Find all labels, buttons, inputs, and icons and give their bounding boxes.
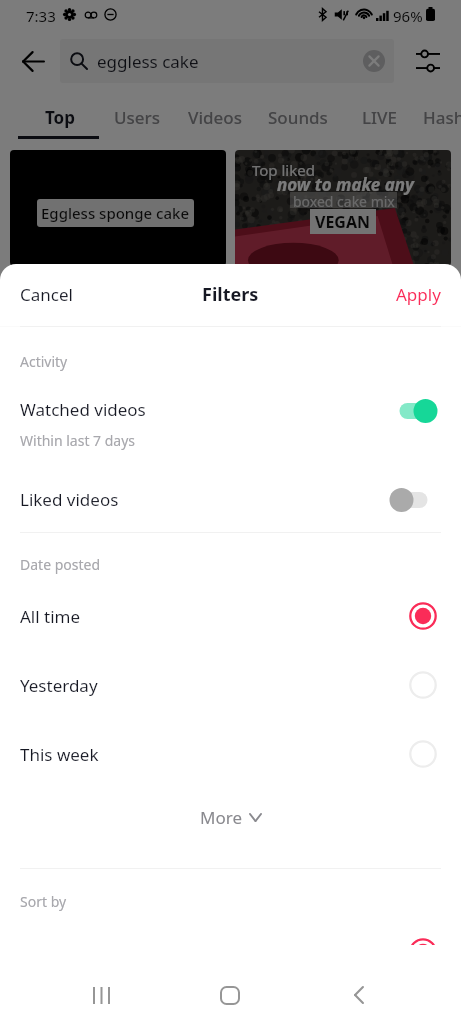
staticText: Sort by — [20, 892, 67, 911]
button[interactable]: Selected — [405, 938, 441, 945]
staticText: 96% — [393, 6, 423, 26]
staticText: Top liked — [252, 160, 315, 180]
staticText: Cancel — [20, 283, 73, 306]
staticText: Sounds — [268, 106, 328, 129]
button[interactable]: Top — [33, 100, 63, 146]
button[interactable]: Home — [209, 974, 251, 1016]
button[interactable]: Back — [10, 38, 56, 84]
staticText: Date posted — [20, 555, 101, 574]
staticText: Liked videos — [20, 488, 119, 511]
button[interactable] — [0, 657, 461, 715]
button[interactable]: eggless cake — [60, 39, 394, 83]
button[interactable]: Sounds — [256, 100, 316, 146]
button[interactable]: Not selected — [405, 671, 441, 707]
staticText: boxed cake mix — [293, 192, 395, 208]
button[interactable]: LIVE — [350, 100, 386, 146]
staticText: Videos — [188, 106, 242, 129]
staticText: Activity — [20, 352, 68, 371]
staticText: 7:33 — [26, 6, 56, 26]
staticText: Users — [114, 106, 161, 129]
staticText: More — [200, 806, 242, 829]
staticText: All time — [20, 605, 81, 628]
button[interactable] — [0, 726, 461, 784]
button[interactable] — [0, 588, 461, 646]
staticText: Filters — [202, 282, 259, 307]
button[interactable]: More — [0, 795, 461, 839]
staticText: Watched videos — [20, 398, 146, 421]
button[interactable]: Eggless sponge cake — [10, 150, 226, 266]
button[interactable]: Videos — [176, 100, 230, 146]
button[interactable]: Not selected — [405, 740, 441, 776]
button[interactable]: Search filters — [405, 38, 451, 84]
staticText: eggless cake — [97, 50, 199, 73]
button[interactable]: Off — [388, 487, 440, 513]
button[interactable]: Users — [102, 100, 149, 146]
button[interactable]: Top liked — [235, 150, 451, 266]
button[interactable]: Apply — [384, 276, 453, 313]
staticText: now to make any — [277, 173, 414, 196]
button[interactable]: On — [388, 398, 440, 424]
button[interactable]: Recent apps — [80, 974, 122, 1016]
button[interactable]: Clear search — [352, 39, 394, 83]
button[interactable]: Back — [338, 974, 380, 1016]
staticText: Top — [45, 106, 75, 129]
staticText: Yesterday — [20, 674, 98, 697]
staticText: Within last 7 days — [20, 431, 136, 450]
button[interactable]: Hash — [411, 100, 453, 146]
staticText: Hash — [423, 106, 461, 129]
staticText: VEGAN — [315, 211, 371, 233]
button[interactable]: Cancel — [8, 276, 85, 313]
staticText: Apply — [396, 283, 441, 306]
staticText: LIVE — [362, 106, 398, 129]
button[interactable]: Selected — [405, 602, 441, 638]
staticText: Eggless sponge cake — [41, 203, 190, 223]
button[interactable] — [0, 382, 461, 456]
button[interactable] — [0, 470, 461, 528]
staticText: This week — [20, 743, 99, 766]
